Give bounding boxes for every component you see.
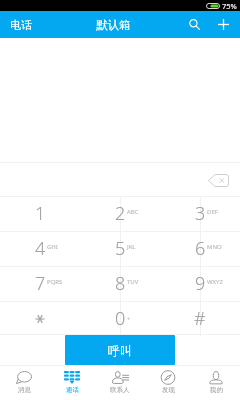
staticText: DEF [207,208,218,216]
button[interactable]: 0 [80,301,160,336]
button[interactable]: Delete [208,174,229,187]
staticText: WXYZ [207,278,223,286]
button[interactable]: 6 [160,231,240,266]
staticText: 呼叫 [108,343,132,358]
staticText: 电话 [10,18,32,32]
staticText: 75% [222,1,237,11]
button[interactable] [0,301,80,336]
staticText: 1 [35,201,46,226]
staticText: # [194,306,206,331]
staticText: 9 [195,271,206,296]
button[interactable]: 3 [160,196,240,231]
staticText: 4 [35,236,46,261]
staticText: MNO [207,243,222,251]
button[interactable]: Search [181,11,208,38]
button[interactable]: 发现 [144,365,192,400]
staticText: 通话 [66,386,79,394]
button[interactable]: 呼叫 [65,335,175,365]
button[interactable]: 2 [80,196,160,231]
staticText: 6 [195,236,206,261]
staticText: TUV [127,278,139,286]
staticText: PQRS [47,278,63,286]
staticText: 8 [115,271,126,296]
staticText: 我的 [210,386,223,394]
button[interactable]: 1 [0,196,80,231]
staticText: JKL [127,243,136,251]
button[interactable]: 通话 [48,365,96,400]
staticText: 默认箱 [96,18,131,32]
staticText: GHI [47,243,58,251]
button[interactable]: Add [208,11,238,38]
button[interactable]: 4 [0,231,80,266]
staticText: + [127,315,131,323]
button[interactable]: 5 [80,231,160,266]
staticText: 0 [115,306,126,331]
button[interactable]: 电话 [10,11,32,38]
staticText: 发现 [162,386,175,394]
button[interactable]: 7 [0,266,80,301]
button[interactable]: 联系人 [96,365,144,400]
staticText: 7 [35,271,46,296]
button[interactable]: # [160,301,240,336]
staticText: 消息 [18,386,31,394]
staticText: 3 [195,201,206,226]
button[interactable]: 消息 [0,365,48,400]
staticText: 5 [115,236,126,261]
staticText: ABC [127,208,139,216]
button[interactable]: 9 [160,266,240,301]
button[interactable]: 我的 [192,365,240,400]
button[interactable]: 8 [80,266,160,301]
staticText: 2 [115,201,126,226]
staticText: 联系人 [110,386,130,394]
